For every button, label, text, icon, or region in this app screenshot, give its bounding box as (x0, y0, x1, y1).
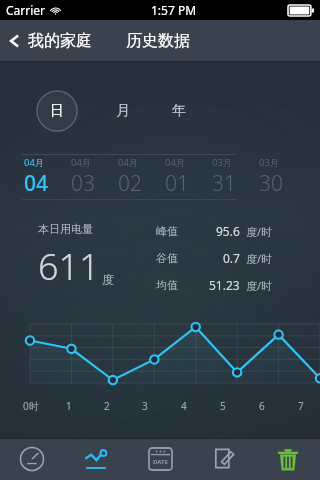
staticText: 1:57 PM (151, 2, 197, 18)
staticText: 年 (172, 102, 186, 120)
button[interactable]: 我的家庭 (0, 27, 100, 55)
staticText: 度/时 (246, 224, 273, 239)
staticText: 611 (38, 242, 100, 291)
staticText: 04月 (118, 156, 139, 169)
staticText: 95.6 (216, 223, 240, 239)
staticText: 月 (116, 102, 130, 120)
staticText: 03月 (259, 156, 280, 169)
staticText: 01 (165, 169, 189, 198)
button[interactable]: Edit (192, 438, 256, 480)
staticText: 04月 (24, 156, 45, 169)
staticText: 日 (50, 102, 64, 120)
staticText: 0.7 (223, 250, 240, 266)
staticText: 度 (102, 272, 114, 287)
staticText: 4 (181, 399, 187, 413)
button[interactable]: 04月 (24, 156, 71, 198)
staticText: 02 (118, 169, 142, 198)
staticText: 04 (24, 169, 49, 198)
button[interactable]: Delete (256, 438, 320, 480)
staticText: 历史数据 (126, 31, 190, 51)
staticText: 峰值 (156, 224, 178, 238)
staticText: 度/时 (246, 251, 273, 266)
button[interactable]: 04月 (118, 156, 165, 198)
staticText: 本日用电量 (38, 222, 93, 236)
staticText: 2 (104, 399, 110, 413)
staticText: 5 (220, 399, 226, 413)
staticText: 04月 (71, 156, 92, 169)
staticText: 04月 (165, 156, 186, 169)
staticText: 3 (142, 399, 148, 413)
staticText: 度/时 (246, 278, 273, 293)
button[interactable]: Gauge (0, 438, 64, 480)
staticText: 均值 (156, 278, 178, 292)
button[interactable]: 03月 (212, 156, 259, 198)
staticText: 1 (66, 399, 72, 413)
staticText: 51.23 (209, 277, 240, 293)
button[interactable]: 月 (106, 94, 140, 128)
staticText: 03 (71, 169, 95, 198)
staticText: 我的家庭 (28, 31, 92, 51)
staticText: 0时 (23, 399, 39, 413)
button[interactable]: 年 (162, 94, 196, 128)
staticText: 03月 (212, 156, 233, 169)
staticText: 7 (298, 399, 304, 413)
button[interactable]: 04月 (165, 156, 212, 198)
button[interactable]: 04月 (71, 156, 118, 198)
staticText: Carrier (6, 2, 46, 18)
button[interactable]: Calendar (128, 438, 192, 480)
staticText: 6 (259, 399, 265, 413)
button[interactable]: Chart (64, 438, 128, 480)
button[interactable]: 03月 (259, 156, 306, 198)
staticText: 30 (259, 169, 283, 198)
button[interactable]: 日 (36, 90, 78, 132)
staticText: DATE (153, 458, 168, 466)
staticText: 31 (212, 169, 236, 198)
staticText: 谷值 (156, 251, 178, 265)
